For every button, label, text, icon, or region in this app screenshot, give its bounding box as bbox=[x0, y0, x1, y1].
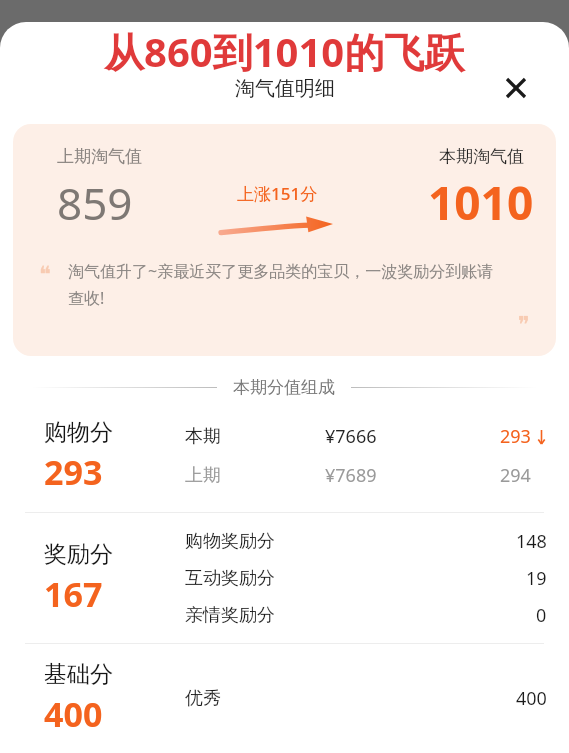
staticText: 293 bbox=[500, 424, 531, 449]
button[interactable]: 上期淘气值 bbox=[13, 124, 556, 356]
staticText: ¥7689 bbox=[325, 463, 377, 488]
staticText: 互动奖励分 bbox=[185, 567, 275, 590]
staticText: 148 bbox=[516, 529, 547, 554]
staticText: 859 bbox=[57, 173, 133, 233]
staticText: 19 bbox=[526, 566, 547, 591]
staticText: ❞ bbox=[518, 312, 530, 338]
staticText: 购物分 bbox=[44, 418, 113, 447]
staticText: 奖励分 bbox=[44, 540, 113, 569]
staticText: 本期 bbox=[185, 425, 221, 448]
staticText: ¥7666 bbox=[325, 424, 377, 449]
staticText: 本期淘气值 bbox=[439, 146, 524, 167]
staticText: 购物奖励分 bbox=[185, 530, 275, 553]
staticText: 上期淘气值 bbox=[57, 146, 142, 167]
staticText: 0 bbox=[536, 603, 547, 628]
staticText: 400 bbox=[44, 691, 103, 737]
button[interactable]: Close bbox=[499, 71, 533, 105]
staticText: ❝ bbox=[39, 262, 51, 288]
staticText: 本期分值组成 bbox=[233, 377, 335, 398]
button[interactable]: 奖励分 bbox=[0, 513, 569, 643]
button[interactable]: 基础分 bbox=[0, 644, 569, 753]
staticText: 400 bbox=[516, 686, 547, 711]
staticText: 上期 bbox=[185, 464, 221, 487]
staticText: 294 bbox=[500, 463, 531, 488]
staticText: 淘气值升了~亲最近买了更多品类的宝贝，一波奖励分到账请查收! bbox=[68, 260, 504, 309]
staticText: 优秀 bbox=[185, 687, 221, 710]
staticText: 1010 bbox=[428, 171, 534, 234]
staticText: 淘气值明细 bbox=[235, 76, 335, 101]
staticText: 从860到1010的飞跃 bbox=[104, 24, 465, 79]
staticText: 基础分 bbox=[44, 660, 113, 689]
staticText: 167 bbox=[44, 571, 103, 617]
staticText: 亲情奖励分 bbox=[185, 604, 275, 627]
staticText: 上涨151分 bbox=[237, 182, 318, 205]
staticText: 293 bbox=[44, 449, 103, 495]
button[interactable]: 购物分 bbox=[0, 400, 569, 512]
